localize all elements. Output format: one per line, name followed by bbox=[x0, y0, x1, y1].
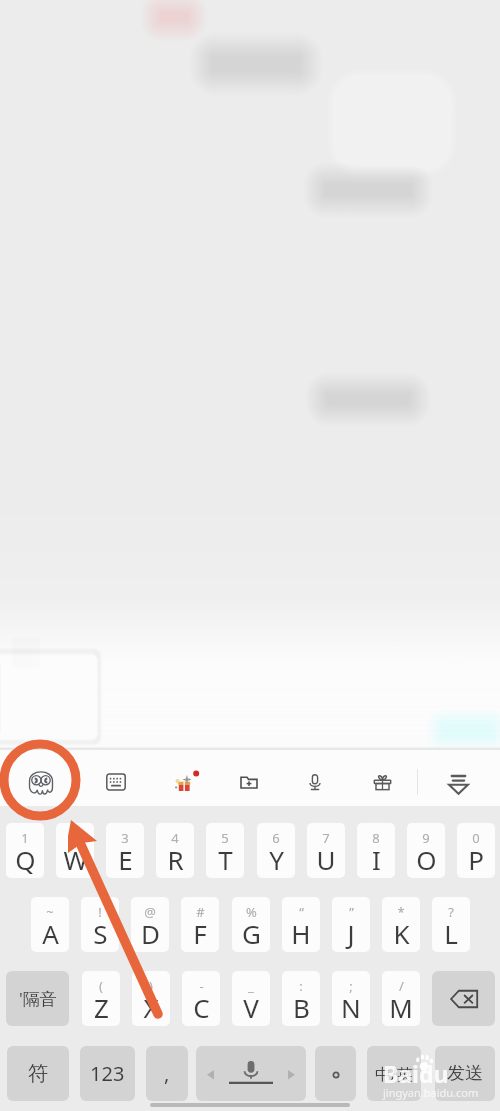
button[interactable]: Backspace bbox=[432, 971, 495, 1026]
staticText: _ bbox=[248, 977, 254, 995]
button[interactable]: Language toggle bbox=[367, 1046, 421, 1101]
button[interactable]: R bbox=[156, 823, 194, 878]
button[interactable]: W bbox=[56, 823, 94, 878]
button[interactable]: Emoji bbox=[18, 759, 64, 805]
button[interactable]: Z bbox=[82, 971, 120, 1026]
button[interactable]: Tone separator bbox=[6, 971, 69, 1026]
staticText: ~ bbox=[46, 903, 54, 921]
staticText: B bbox=[293, 990, 310, 1025]
button[interactable]: V bbox=[232, 971, 270, 1026]
staticText: / bbox=[399, 977, 404, 995]
button[interactable]: J bbox=[332, 897, 370, 952]
button[interactable]: X bbox=[132, 971, 170, 1026]
staticText: jingyan.baidu.com bbox=[383, 1085, 479, 1100]
staticText: * bbox=[397, 903, 405, 921]
staticText: 9 bbox=[422, 829, 430, 847]
button[interactable]: K bbox=[382, 897, 420, 952]
button[interactable]: H bbox=[282, 897, 320, 952]
staticText: F bbox=[193, 916, 207, 951]
staticText: W bbox=[63, 842, 88, 877]
staticText: 7 bbox=[322, 829, 330, 847]
button[interactable]: Numbers bbox=[80, 1046, 135, 1101]
button[interactable]: P bbox=[457, 823, 495, 878]
button[interactable]: E bbox=[106, 823, 144, 878]
staticText: 中/英 bbox=[375, 1063, 413, 1085]
button[interactable]: Keyboard bbox=[93, 759, 139, 805]
button[interactable]: Y bbox=[257, 823, 295, 878]
button[interactable]: Add attachment bbox=[226, 759, 272, 805]
staticText: T bbox=[218, 842, 233, 877]
staticText: “ bbox=[299, 903, 304, 921]
staticText: J bbox=[347, 916, 355, 951]
staticText: 6 bbox=[272, 829, 280, 847]
staticText: '隔音 bbox=[19, 987, 57, 1010]
staticText: R bbox=[167, 842, 184, 877]
staticText: X bbox=[143, 990, 159, 1025]
staticText: ; bbox=[349, 977, 353, 995]
staticText: U bbox=[316, 842, 336, 877]
staticText: 123 bbox=[90, 1060, 125, 1087]
staticText: - bbox=[199, 977, 204, 995]
staticText: H bbox=[291, 916, 311, 951]
button[interactable]: Send bbox=[435, 1046, 495, 1101]
staticText: G bbox=[242, 916, 261, 951]
button[interactable]: I bbox=[357, 823, 395, 878]
staticText: 1 bbox=[21, 829, 29, 847]
staticText: 4 bbox=[171, 829, 179, 847]
button[interactable]: Gift bbox=[359, 759, 405, 805]
button[interactable]: Comma bbox=[146, 1046, 188, 1101]
button[interactable]: Stickers bbox=[163, 759, 209, 805]
button[interactable]: Voice input bbox=[292, 759, 338, 805]
button[interactable]: Hide keyboard bbox=[435, 759, 481, 805]
button[interactable]: M bbox=[382, 971, 420, 1026]
staticText: ) bbox=[149, 977, 153, 995]
staticText: Z bbox=[94, 990, 109, 1025]
staticText: P bbox=[468, 842, 484, 877]
staticText: V bbox=[243, 990, 259, 1025]
button[interactable]: B bbox=[282, 971, 320, 1026]
staticText: 发送 bbox=[447, 1062, 483, 1085]
button[interactable]: O bbox=[407, 823, 445, 878]
staticText: Baidu bbox=[383, 1058, 449, 1089]
staticText: ? bbox=[448, 903, 454, 921]
button[interactable]: N bbox=[332, 971, 370, 1026]
button[interactable]: Space bbox=[196, 1046, 306, 1101]
staticText: I bbox=[372, 842, 381, 877]
button[interactable]: F bbox=[181, 897, 219, 952]
staticText: Y bbox=[269, 842, 284, 877]
staticText: N bbox=[341, 990, 361, 1025]
staticText: L bbox=[444, 916, 458, 951]
button[interactable]: Period bbox=[315, 1046, 356, 1101]
staticText: K bbox=[393, 916, 410, 951]
staticText: # bbox=[196, 903, 205, 921]
button[interactable]: D bbox=[131, 897, 169, 952]
staticText: 5 bbox=[221, 829, 229, 847]
staticText: Q bbox=[15, 842, 36, 877]
staticText: 0 bbox=[472, 829, 480, 847]
staticText: 符 bbox=[28, 1061, 48, 1086]
button[interactable]: L bbox=[432, 897, 470, 952]
staticText: ! bbox=[98, 903, 102, 921]
staticText: C bbox=[193, 990, 210, 1025]
staticText: A bbox=[42, 916, 59, 951]
button[interactable]: Symbols bbox=[7, 1046, 69, 1101]
staticText: E bbox=[118, 842, 133, 877]
button[interactable]: S bbox=[81, 897, 119, 952]
button[interactable]: U bbox=[307, 823, 345, 878]
button[interactable]: T bbox=[206, 823, 244, 878]
staticText: % bbox=[246, 903, 257, 921]
button[interactable]: C bbox=[182, 971, 220, 1026]
button[interactable]: Q bbox=[6, 823, 44, 878]
staticText: M bbox=[389, 990, 413, 1025]
staticText: S bbox=[93, 916, 108, 951]
staticText: D bbox=[141, 916, 160, 951]
button[interactable]: G bbox=[232, 897, 270, 952]
staticText: @ bbox=[144, 903, 156, 921]
staticText: , bbox=[164, 1060, 170, 1087]
staticText: 8 bbox=[372, 829, 380, 847]
staticText: ( bbox=[99, 977, 103, 995]
button[interactable]: A bbox=[31, 897, 69, 952]
staticText: 3 bbox=[121, 829, 129, 847]
staticText: O bbox=[416, 842, 437, 877]
